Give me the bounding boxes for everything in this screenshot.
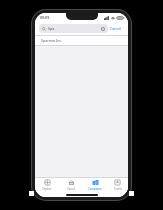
button[interactable]: Saved — [59, 178, 83, 192]
button[interactable]: Explore — [35, 178, 59, 192]
staticText: Cancel — [110, 26, 122, 31]
staticText: Sparrow Inc. — [41, 38, 63, 43]
staticText: 09:09 — [40, 15, 50, 20]
staticText: Profile — [114, 187, 122, 191]
button[interactable]: Sparrow Inc. — [35, 36, 128, 45]
button[interactable]: Profile — [107, 178, 128, 192]
staticText: Explore — [42, 187, 52, 191]
button[interactable]: Clear search — [101, 27, 105, 31]
button[interactable]: Cancel — [108, 25, 124, 32]
staticText: Spa — [48, 26, 101, 31]
staticText: Companies — [88, 187, 102, 191]
button[interactable]: Companies — [83, 178, 107, 192]
staticText: Saved — [67, 187, 75, 191]
button[interactable]: Spa — [39, 24, 108, 33]
